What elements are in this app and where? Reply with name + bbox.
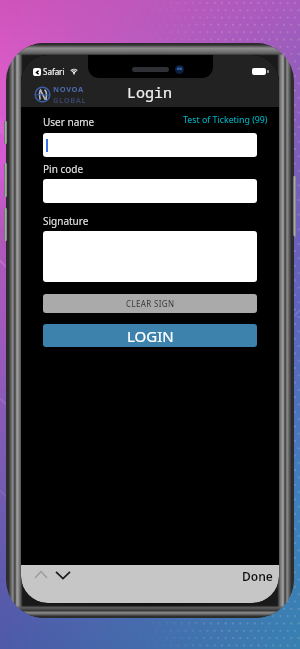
staticText: NOVOA [53,84,84,94]
staticText: Login [127,82,173,102]
staticText: User name [43,115,95,129]
button[interactable]: CLEAR SIGN [43,294,257,313]
button[interactable]: Next field [54,566,72,583]
button[interactable]: Back to Safari [33,66,65,77]
staticText: Done [242,568,273,584]
button[interactable]: Done [242,568,273,584]
staticText: CLEAR SIGN [126,298,175,309]
staticText: LOGIN [127,326,174,346]
staticText: Safari [43,66,65,77]
staticText: Test of Ticketing (99) [183,114,268,126]
button[interactable]: Previous field [32,566,49,582]
button[interactable] [43,179,257,203]
staticText: Pin code [43,162,84,176]
button[interactable] [43,133,257,157]
button[interactable] [43,231,257,282]
staticText: Signature [43,214,89,228]
button[interactable]: LOGIN [43,324,257,347]
staticText: GLOBAL [53,95,87,105]
button[interactable]: Test of Ticketing (99) [183,114,268,126]
